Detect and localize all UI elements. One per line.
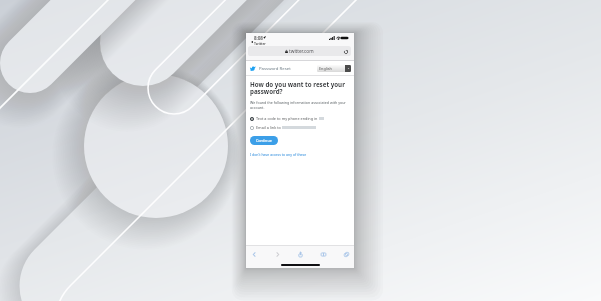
staticText: Continue (256, 138, 272, 143)
staticText: 8:08 (254, 35, 263, 41)
staticText: twitter.com (289, 48, 314, 54)
button[interactable]: Email a link to (250, 125, 351, 130)
button[interactable]: Text a code to my phone ending in (250, 116, 351, 121)
button[interactable]: Forward (271, 248, 283, 260)
button[interactable]: Tabs (340, 248, 352, 260)
button[interactable]: Back (248, 248, 260, 260)
button[interactable]: Reload (343, 49, 348, 54)
button[interactable]: Continue (250, 136, 278, 145)
staticText: How do you want to reset your password? (250, 80, 351, 96)
button[interactable]: Bookmarks (317, 248, 329, 260)
button[interactable]: Share (294, 248, 306, 260)
staticText: Twitter (254, 41, 266, 46)
staticText: English (319, 66, 332, 71)
staticText: Email a link to (256, 125, 282, 130)
staticText: We found the following information assoc… (250, 100, 351, 110)
staticText: Password Reset (259, 65, 291, 71)
staticText: Text a code to my phone ending in (256, 116, 319, 121)
button[interactable]: I don't have access to any of these (250, 152, 307, 157)
button[interactable]: twitter.com (248, 46, 351, 56)
button[interactable]: English (317, 65, 351, 72)
